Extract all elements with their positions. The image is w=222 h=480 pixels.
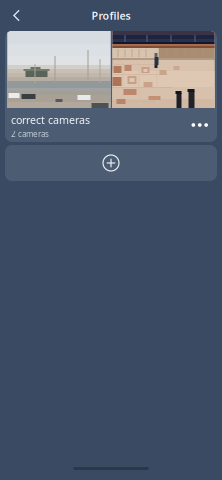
staticText: Profiles [91,8,130,23]
button[interactable]: Back [0,3,29,27]
button[interactable]: More options [185,116,214,134]
button[interactable]: Add profile [5,145,217,181]
staticText: 2 cameras [11,128,49,139]
staticText: correct cameras [11,113,90,127]
